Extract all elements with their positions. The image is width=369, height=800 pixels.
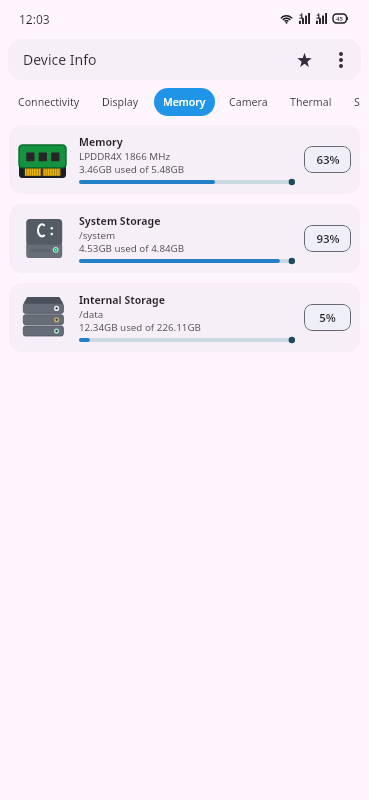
- button[interactable]: Memory: [154, 88, 215, 116]
- staticText: 93%: [316, 231, 340, 247]
- staticText: Internal Storage: [79, 293, 165, 307]
- staticText: Memory: [79, 135, 123, 149]
- button[interactable]: 63%: [304, 146, 351, 173]
- button[interactable]: Thermal: [279, 88, 343, 116]
- button[interactable]: Display: [91, 88, 150, 116]
- staticText: LPDDR4X 1866 MHz: [79, 150, 171, 163]
- staticText: 3.46GB used of 5.48GB: [79, 163, 185, 176]
- staticText: Display: [102, 95, 139, 109]
- staticText: Thermal: [290, 95, 332, 109]
- button[interactable]: Storage: [343, 88, 369, 116]
- button[interactable]: Favorite: [288, 43, 321, 76]
- staticText: Storage: [354, 95, 358, 109]
- staticText: 12.34GB used of 226.11GB: [79, 321, 201, 334]
- button[interactable]: Memory: [9, 125, 360, 194]
- button[interactable]: Camera: [218, 88, 279, 116]
- button[interactable]: 93%: [304, 225, 351, 252]
- staticText: /system: [79, 229, 116, 242]
- staticText: System Storage: [79, 214, 161, 228]
- staticText: 63%: [316, 152, 340, 168]
- staticText: Connectivity: [18, 95, 80, 109]
- button[interactable]: Internal Storage: [9, 283, 360, 352]
- staticText: 45: [336, 15, 343, 23]
- staticText: Memory: [163, 95, 206, 109]
- staticText: 12:03: [19, 11, 50, 27]
- staticText: /data: [79, 308, 104, 321]
- button[interactable]: More options: [324, 43, 357, 76]
- button[interactable]: Connectivity: [7, 88, 91, 116]
- staticText: Device Info: [23, 50, 97, 69]
- button[interactable]: System Storage: [9, 204, 360, 273]
- staticText: Camera: [229, 95, 268, 109]
- staticText: 4.53GB used of 4.84GB: [79, 242, 185, 255]
- staticText: 5%: [319, 310, 336, 326]
- button[interactable]: 5%: [304, 304, 351, 331]
